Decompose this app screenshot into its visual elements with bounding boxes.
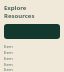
staticText: Item (4, 56, 13, 61)
staticText: Item (4, 62, 13, 67)
staticText: Item (4, 67, 13, 72)
staticText: Item (4, 50, 13, 55)
staticText: Resources (4, 12, 35, 20)
staticText: Explore (4, 4, 27, 12)
staticText: Item (4, 44, 13, 49)
